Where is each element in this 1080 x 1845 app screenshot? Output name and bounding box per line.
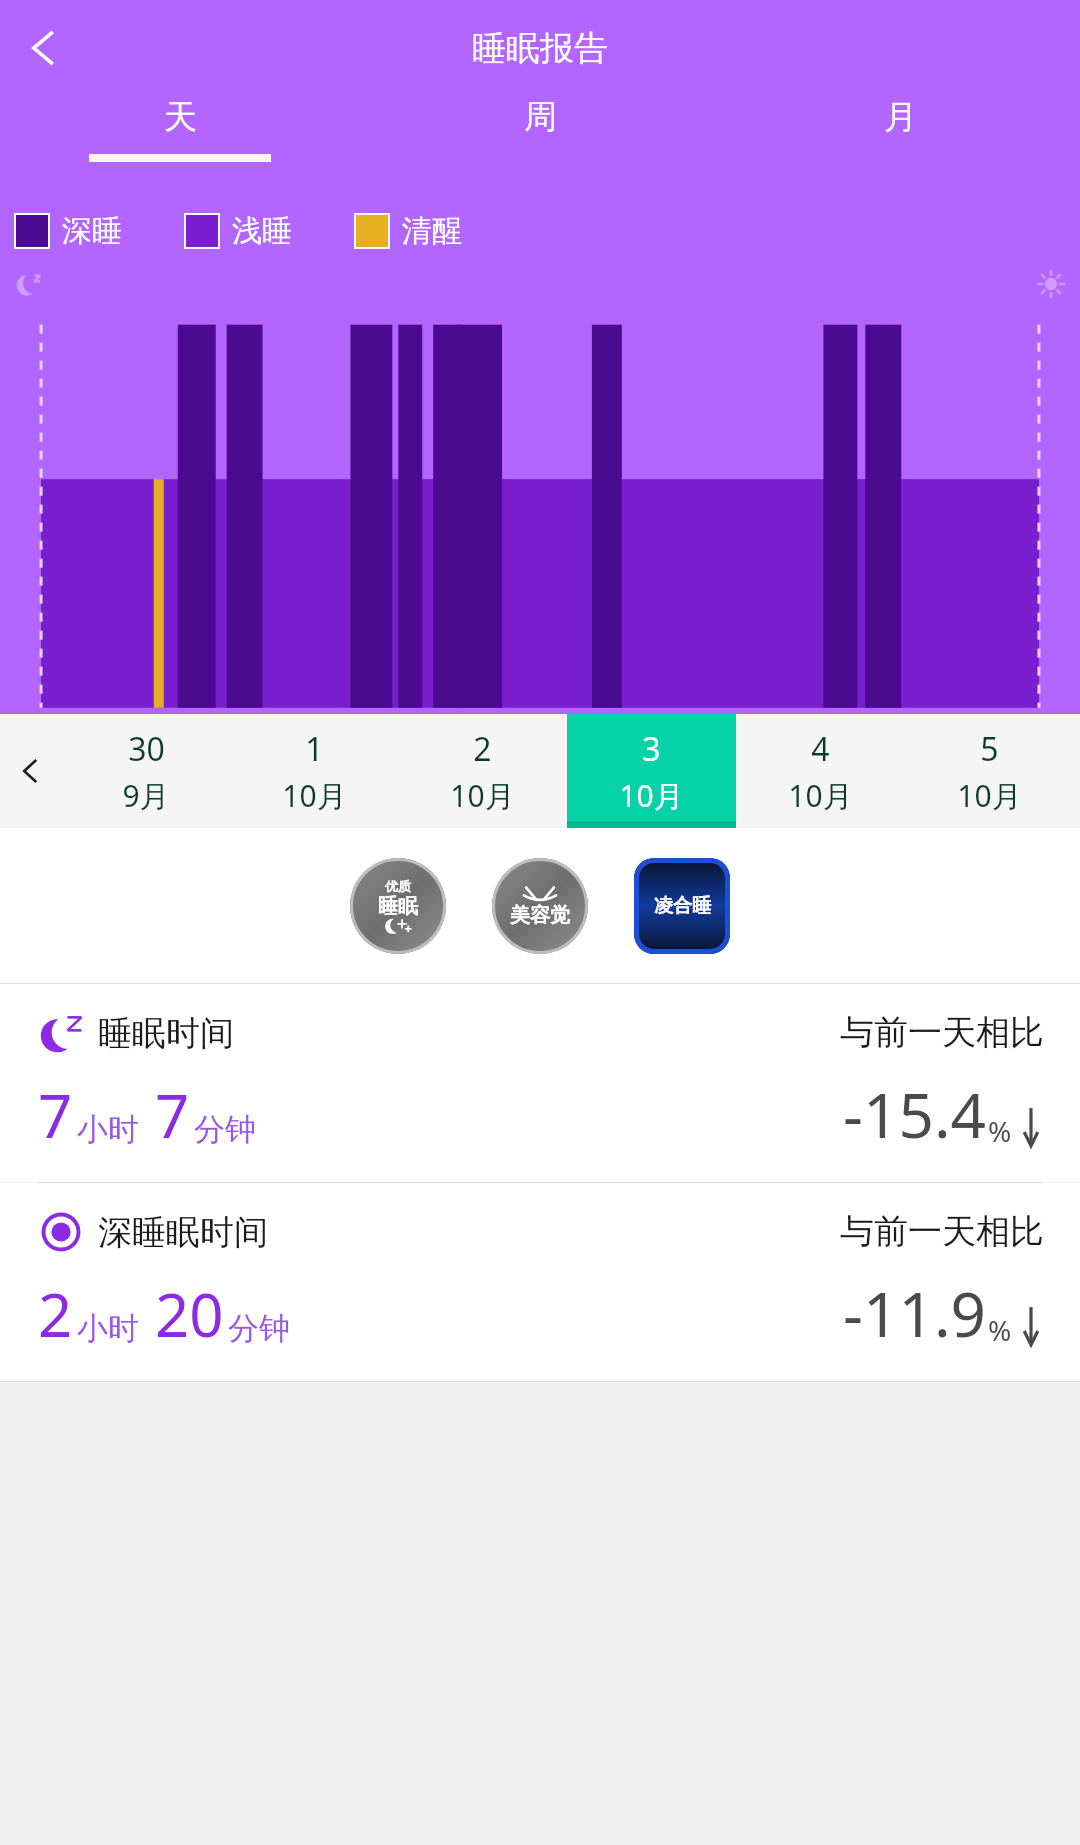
staticText: 小时 — [77, 1110, 139, 1149]
staticText: 1 — [305, 727, 324, 771]
button[interactable]: 1 — [230, 714, 398, 828]
staticText: 浅睡 — [232, 212, 292, 250]
button[interactable]: 凌合睡 — [634, 858, 730, 954]
staticText: 10月 — [788, 775, 853, 816]
staticText: -11.9 — [843, 1271, 986, 1355]
staticText: 30 — [128, 727, 165, 771]
staticText: 睡眠报告 — [472, 27, 608, 70]
staticText: 10月 — [957, 775, 1022, 816]
staticText: % — [988, 1311, 1012, 1349]
staticText: 7 — [38, 1074, 73, 1156]
staticText: 2 — [38, 1273, 73, 1355]
staticText: 分钟 — [228, 1309, 290, 1348]
staticText: 睡眠时间 — [98, 1012, 234, 1055]
staticText: 分钟 — [194, 1110, 256, 1149]
button[interactable]: Previous dates — [0, 714, 62, 828]
staticText: 月 — [884, 96, 917, 138]
staticText: 周 — [524, 96, 557, 138]
button[interactable]: 2 — [398, 714, 567, 828]
staticText: 5 — [980, 727, 999, 771]
button[interactable]: 3 — [567, 714, 736, 828]
staticText: 10月 — [619, 775, 684, 816]
button[interactable]: Back — [8, 12, 80, 84]
button[interactable]: 深睡眠时间 — [0, 1183, 1080, 1381]
staticText: 7 — [155, 1074, 190, 1156]
staticText: -15.4 — [843, 1072, 986, 1156]
staticText: % — [988, 1112, 1012, 1150]
staticText: 清醒 — [402, 212, 462, 250]
staticText: 9月 — [122, 775, 170, 816]
staticText: 3 — [642, 727, 661, 771]
button[interactable]: 睡眠时间 — [0, 984, 1080, 1182]
staticText: 深睡眠时间 — [98, 1211, 268, 1254]
button[interactable]: 睡眠 — [350, 858, 446, 954]
button[interactable]: 天 — [0, 96, 360, 188]
staticText: 2 — [473, 727, 492, 771]
staticText: 10月 — [282, 775, 347, 816]
button[interactable]: 4 — [736, 714, 905, 828]
staticText: 4 — [811, 727, 830, 771]
button[interactable]: 周 — [360, 96, 720, 188]
staticText: 深睡 — [62, 212, 122, 250]
staticText: 20 — [155, 1273, 224, 1355]
staticText: 小时 — [77, 1309, 139, 1348]
staticText: 睡眠 — [378, 894, 418, 919]
staticText: 与前一天相比 — [840, 1210, 1044, 1253]
staticText: 天 — [164, 96, 197, 138]
button[interactable]: 月 — [720, 96, 1080, 188]
button[interactable]: 30 — [62, 714, 230, 828]
staticText: 优质 — [385, 878, 411, 894]
staticText: 美容觉 — [510, 903, 570, 928]
staticText: 凌合睡 — [654, 894, 711, 918]
staticText: 10月 — [450, 775, 515, 816]
button[interactable]: 5 — [905, 714, 1074, 828]
button[interactable]: 美容觉 — [492, 858, 588, 954]
staticText: 与前一天相比 — [840, 1011, 1044, 1054]
